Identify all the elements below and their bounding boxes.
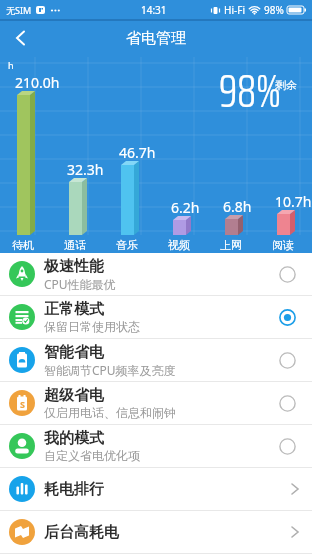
staticText: 智能调节CPU频率及亮度 xyxy=(44,362,176,378)
staticText: 仅启用电话、信息和闹钟 xyxy=(44,405,176,420)
staticText: 我的模式 xyxy=(44,429,104,448)
staticText: 32.3h xyxy=(67,160,104,179)
staticText: 自定义省电优化项 xyxy=(44,448,140,463)
button[interactable] xyxy=(0,19,40,57)
staticText: 省电管理 xyxy=(126,29,186,48)
staticText: 阅读 xyxy=(272,238,294,252)
button[interactable]: S xyxy=(0,382,312,425)
staticText: 音乐 xyxy=(116,238,138,252)
staticText: 14:31 xyxy=(141,3,167,17)
staticText: 保留日常使用状态 xyxy=(44,319,140,334)
button[interactable]: 我的模式 xyxy=(0,425,312,468)
staticText: 10.7h xyxy=(275,192,312,211)
staticText: 视频 xyxy=(168,238,190,252)
staticText: 上网 xyxy=(220,238,242,252)
staticText: 智能省电 xyxy=(44,343,104,362)
staticText: 正常模式 xyxy=(44,300,104,319)
staticText: 98% xyxy=(219,54,282,128)
staticText: 210.0h xyxy=(15,73,60,92)
staticText: 6.8h xyxy=(223,197,252,216)
staticText: 剩余 xyxy=(275,78,297,92)
button[interactable]: 极速性能 xyxy=(0,253,312,296)
staticText: 后台高耗电 xyxy=(44,523,119,542)
staticText: h xyxy=(8,59,14,71)
button[interactable]: 智能省电 xyxy=(0,339,312,382)
staticText: 46.7h xyxy=(119,143,156,162)
staticText: 极速性能 xyxy=(44,257,104,276)
button[interactable]: 后台高耗电 xyxy=(0,511,312,554)
button[interactable]: 耗电排行 xyxy=(0,468,312,511)
staticText: S xyxy=(20,398,25,410)
staticText: 6.2h xyxy=(171,198,200,217)
staticText: 待机 xyxy=(12,238,34,252)
staticText: 98% xyxy=(264,3,284,17)
button[interactable]: 正常模式 xyxy=(0,296,312,339)
staticText: 通话 xyxy=(64,238,86,252)
staticText: 耗电排行 xyxy=(44,480,104,499)
staticText: Hi-Fi xyxy=(224,3,245,17)
staticText: CPU性能最优 xyxy=(44,276,116,292)
staticText: 超级省电 xyxy=(44,386,104,405)
staticText: 无SIM xyxy=(6,4,32,16)
